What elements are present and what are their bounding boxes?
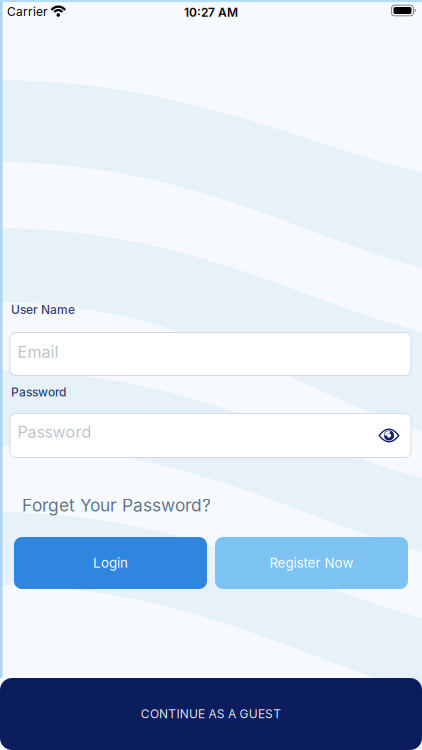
staticText: Carrier — [7, 4, 48, 19]
button[interactable]: Show password — [376, 422, 402, 448]
staticText: Register Now — [269, 555, 353, 571]
staticText: CONTINUE AS A GUEST — [141, 707, 281, 721]
staticText: Email — [17, 342, 58, 361]
staticText: Password — [11, 385, 66, 399]
staticText: Login — [93, 555, 128, 571]
staticText: 10:27 AM — [184, 5, 238, 20]
button[interactable]: CONTINUE AS A GUEST — [0, 678, 422, 750]
button[interactable]: User Name, Email — [10, 332, 411, 375]
staticText: User Name — [11, 302, 75, 317]
button[interactable]: Forget Your Password? — [22, 495, 211, 515]
button[interactable]: Password — [10, 413, 411, 457]
button[interactable]: Login — [14, 537, 207, 589]
button[interactable]: Register Now — [215, 537, 408, 589]
staticText: Password — [17, 422, 91, 441]
staticText: Forget Your Password? — [22, 495, 211, 515]
